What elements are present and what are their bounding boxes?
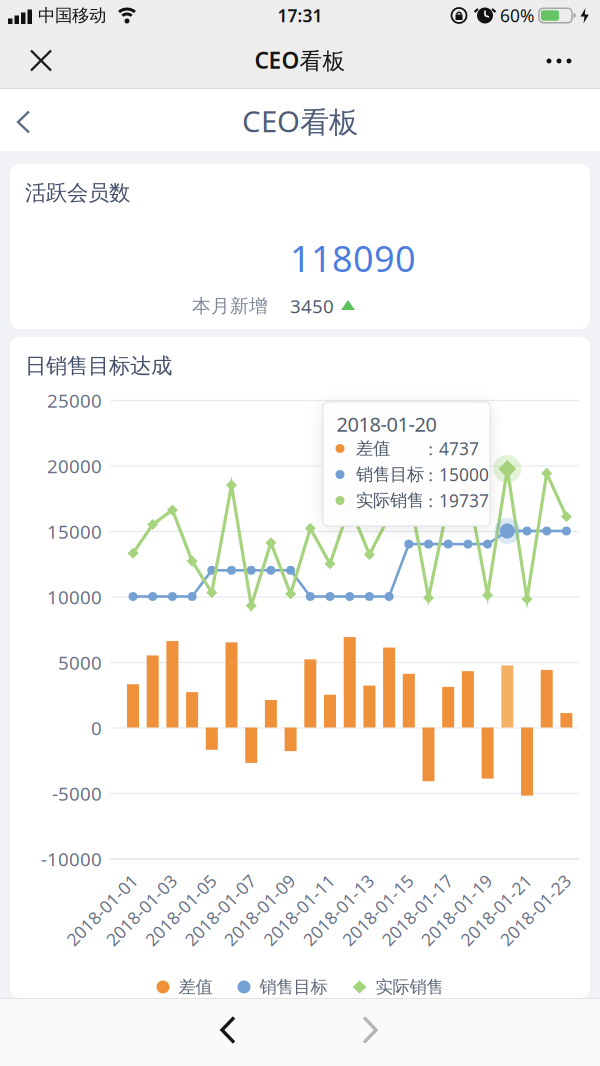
staticText: ：19737 bbox=[422, 489, 489, 512]
staticText: 118090 bbox=[290, 234, 416, 282]
staticText: 2018-01-15 bbox=[332, 898, 424, 921]
staticText: 2018-01-19 bbox=[411, 898, 503, 921]
staticText: 20000 bbox=[47, 454, 102, 478]
button[interactable] bbox=[541, 47, 577, 75]
staticText: 日销售目标达成 bbox=[25, 353, 172, 379]
button[interactable] bbox=[11, 105, 41, 138]
staticText: 销售目标 bbox=[259, 976, 327, 998]
staticText: ：4737 bbox=[422, 437, 479, 460]
staticText: 差值 bbox=[356, 438, 390, 459]
staticText: 3450 bbox=[290, 294, 334, 318]
staticText: 活跃会员数 bbox=[25, 180, 130, 206]
staticText: 2018-01-07 bbox=[174, 898, 266, 921]
staticText: 2018-01-03 bbox=[95, 898, 187, 921]
staticText: 60% bbox=[500, 4, 534, 27]
staticText: 销售目标 bbox=[356, 464, 424, 485]
staticText: 实际销售 bbox=[356, 490, 424, 511]
staticText: 2018-01-11 bbox=[253, 898, 345, 921]
staticText: 10000 bbox=[47, 585, 102, 609]
staticText: 2018-01-20 bbox=[336, 411, 436, 437]
staticText: CEO看板 bbox=[242, 101, 358, 140]
staticText: 25000 bbox=[47, 388, 102, 413]
staticText: 2018-01-05 bbox=[135, 898, 227, 921]
staticText: 2018-01-23 bbox=[489, 898, 581, 921]
button[interactable] bbox=[356, 1013, 384, 1046]
staticText: 2018-01-01 bbox=[56, 898, 148, 921]
staticText: 17:31 bbox=[277, 4, 322, 27]
staticText: 15000 bbox=[47, 519, 102, 544]
staticText: 差值 bbox=[178, 976, 212, 998]
staticText: 2018-01-13 bbox=[292, 898, 384, 921]
staticText: 2018-01-21 bbox=[450, 898, 542, 921]
staticText: CEO看板 bbox=[254, 45, 345, 75]
staticText: 实际销售 bbox=[375, 976, 443, 998]
staticText: -5000 bbox=[52, 781, 102, 806]
staticText: 2018-01-17 bbox=[371, 898, 463, 921]
staticText: 2018-01-09 bbox=[214, 898, 306, 921]
staticText: 5000 bbox=[58, 650, 102, 675]
staticText: 中国移动 bbox=[38, 5, 106, 26]
staticText: ：15000 bbox=[422, 463, 489, 486]
button[interactable] bbox=[214, 1013, 242, 1046]
staticText: 0 bbox=[91, 716, 102, 740]
staticText: -10000 bbox=[41, 847, 102, 871]
button[interactable] bbox=[19, 38, 63, 82]
staticText: 本月新增 bbox=[192, 294, 268, 317]
